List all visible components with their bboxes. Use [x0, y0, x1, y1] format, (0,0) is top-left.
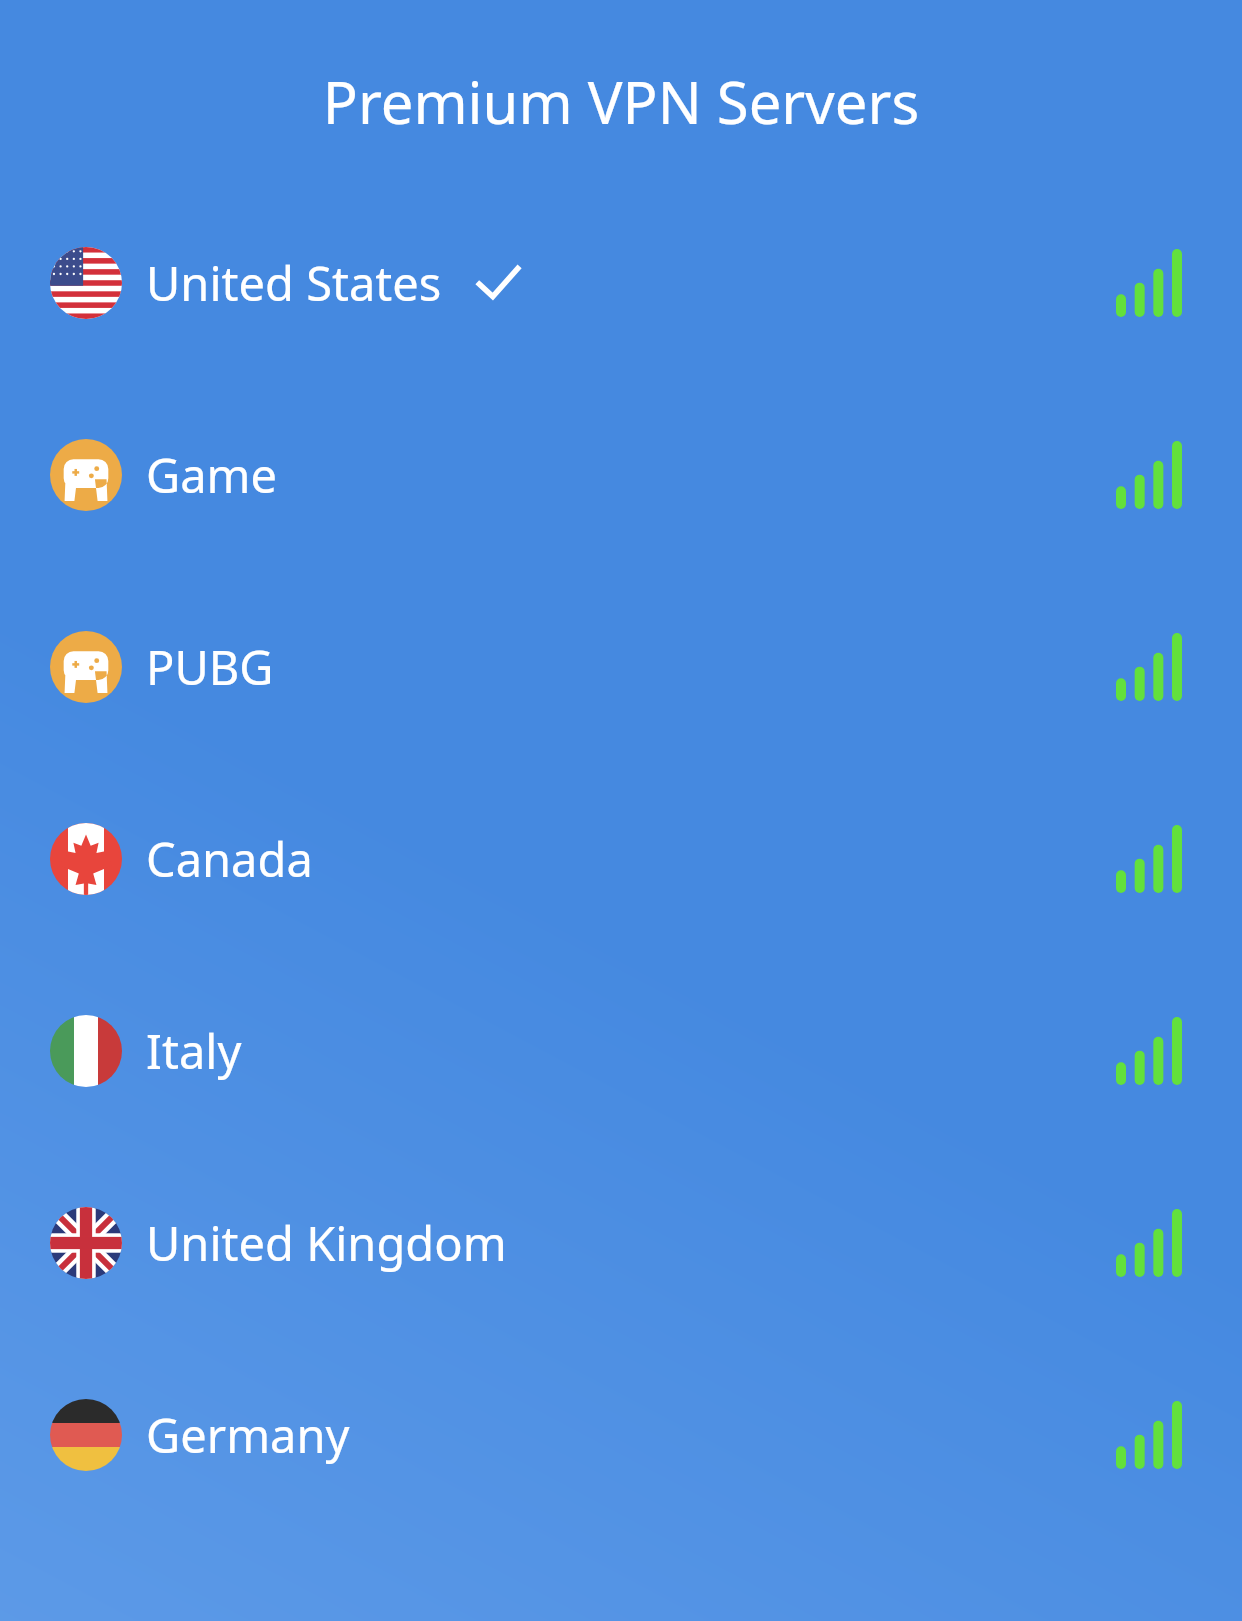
staticText: PUBG: [146, 635, 274, 699]
button[interactable]: United Kingdom: [0, 1195, 1242, 1291]
button[interactable]: Italy: [0, 1003, 1242, 1099]
button[interactable]: Canada: [0, 811, 1242, 907]
staticText: United Kingdom: [146, 1211, 507, 1275]
staticText: Premium VPN Servers: [0, 62, 1242, 141]
button[interactable]: PUBG: [0, 619, 1242, 715]
staticText: United States: [146, 251, 442, 315]
staticText: Game: [146, 443, 278, 507]
button[interactable]: United States: [0, 235, 1242, 331]
button[interactable]: Game: [0, 427, 1242, 523]
staticText: Italy: [146, 1019, 242, 1083]
staticText: Canada: [146, 827, 313, 891]
button[interactable]: Germany: [0, 1387, 1242, 1483]
staticText: Germany: [146, 1403, 350, 1467]
other: Selected: [472, 257, 524, 309]
